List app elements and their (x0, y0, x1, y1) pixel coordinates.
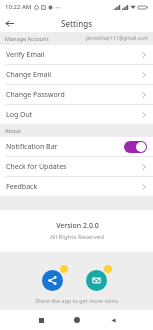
button[interactable]: Share (42, 265, 68, 291)
button[interactable]: Share (86, 265, 112, 291)
staticText: Settings (61, 18, 93, 29)
button[interactable]: Back (0, 14, 18, 32)
button[interactable]: Change Email (0, 65, 153, 84)
staticText: Change Email (6, 70, 52, 80)
staticText: Check for Updates (6, 162, 67, 172)
staticText: About (5, 127, 21, 134)
staticText: Log Out (6, 110, 33, 120)
button[interactable]: Check for Updates (0, 157, 153, 176)
staticText: Share the app to get more coins (35, 297, 118, 304)
button[interactable]: Change Password (0, 85, 153, 104)
button[interactable]: Verify Email (0, 45, 153, 64)
staticText: Manage Account (5, 35, 49, 42)
staticText: Notification Bar (6, 142, 58, 152)
staticText: Verify Email (6, 50, 45, 60)
staticText: Feedback (6, 182, 38, 192)
button[interactable]: Notification Bar (0, 137, 153, 156)
staticText: Change Password (6, 90, 65, 100)
button[interactable]: Back (100, 310, 126, 330)
button[interactable]: Recents (28, 310, 54, 330)
staticText: All Rights Reserved (50, 233, 104, 241)
staticText: jennetfsqr111@gmail.com (86, 35, 148, 42)
button[interactable]: Home (64, 310, 90, 330)
staticText: 10:22 AM (5, 3, 32, 11)
staticText: Version 2.0.0 (56, 221, 99, 231)
button[interactable]: Log Out (0, 105, 153, 124)
button[interactable]: Feedback (0, 177, 153, 196)
